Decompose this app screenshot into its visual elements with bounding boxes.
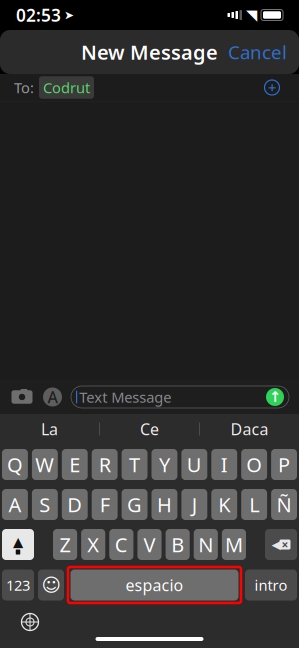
button[interactable]: Camera: [10, 388, 34, 406]
staticText: 123: [6, 575, 30, 595]
button[interactable]: Shift: [2, 529, 34, 560]
staticText: P: [278, 451, 290, 478]
staticText: Ñ: [277, 491, 292, 518]
staticText: D: [67, 491, 82, 518]
button[interactable]: La: [0, 414, 99, 444]
staticText: +: [268, 78, 276, 97]
staticText: X: [87, 531, 99, 558]
staticText: ◀: [271, 538, 280, 551]
button[interactable]: E: [62, 449, 88, 480]
staticText: R: [99, 451, 111, 478]
staticText: ☺: [41, 574, 60, 596]
staticText: M: [225, 531, 243, 558]
button[interactable]: P: [271, 449, 297, 480]
staticText: S: [39, 491, 50, 518]
staticText: U: [187, 451, 202, 478]
staticText: B: [171, 531, 184, 558]
button[interactable]: S: [32, 489, 58, 520]
staticText: Q: [7, 451, 23, 478]
staticText: Daca: [230, 418, 268, 440]
button[interactable]: Emoji: [38, 569, 64, 600]
staticText: To:: [14, 78, 34, 97]
button[interactable]: espacio: [68, 567, 241, 603]
staticText: K: [218, 491, 230, 518]
button[interactable]: J: [181, 489, 207, 520]
staticText: ◥: [246, 7, 257, 23]
staticText: ▲: [13, 534, 23, 549]
staticText: O: [246, 451, 262, 478]
staticText: E: [69, 451, 80, 478]
button[interactable]: N: [194, 529, 218, 560]
staticText: T: [129, 451, 140, 478]
staticText: New Message: [81, 39, 218, 65]
staticText: A: [8, 491, 21, 518]
staticText: F: [100, 491, 110, 518]
button[interactable]: V: [137, 529, 161, 560]
button[interactable]: Apps: [42, 386, 63, 407]
button[interactable]: R: [92, 449, 118, 480]
button[interactable]: W: [32, 449, 58, 480]
button[interactable]: Delete: [265, 529, 297, 560]
staticText: C: [115, 531, 128, 558]
staticText: Cancel: [228, 40, 287, 64]
button[interactable]: 123: [2, 569, 34, 600]
staticText: La: [41, 418, 58, 440]
button[interactable]: D: [62, 489, 88, 520]
button[interactable]: Y: [151, 449, 177, 480]
staticText: Codrut: [43, 78, 90, 97]
staticText: ➤: [64, 8, 74, 22]
button[interactable]: F: [92, 489, 118, 520]
button[interactable]: T: [122, 449, 147, 480]
button[interactable]: U: [181, 449, 207, 480]
staticText: G: [127, 491, 142, 518]
button[interactable]: Q: [2, 449, 28, 480]
button[interactable]: Ce: [100, 414, 199, 444]
staticText: Y: [159, 451, 170, 478]
button[interactable]: G: [122, 489, 147, 520]
staticText: W: [35, 451, 54, 478]
button[interactable]: A: [2, 489, 28, 520]
staticText: J: [192, 491, 197, 518]
staticText: H: [157, 491, 172, 518]
staticText: A: [47, 386, 57, 408]
button[interactable]: Cancel: [216, 32, 299, 72]
button[interactable]: O: [241, 449, 267, 480]
button[interactable]: X: [81, 529, 105, 560]
staticText: I: [221, 451, 228, 478]
staticText: N: [198, 531, 213, 558]
button[interactable]: Daca: [200, 414, 299, 444]
staticText: ↑: [269, 389, 281, 405]
staticText: 02:53: [16, 3, 61, 26]
button[interactable]: I: [211, 449, 237, 480]
staticText: Z: [60, 531, 71, 558]
button[interactable]: Send: [266, 388, 284, 406]
button[interactable]: L: [241, 489, 267, 520]
staticText: V: [143, 531, 155, 558]
button[interactable]: Next keyboard: [20, 612, 40, 632]
button[interactable]: K: [211, 489, 237, 520]
button[interactable]: H: [151, 489, 177, 520]
button[interactable]: intro: [245, 569, 297, 600]
staticText: espacio: [125, 574, 183, 596]
button[interactable]: Add contact: [259, 74, 285, 100]
staticText: Ce: [140, 418, 159, 440]
button[interactable]: B: [166, 529, 190, 560]
staticText: ×: [281, 536, 288, 552]
button[interactable]: Ñ: [271, 489, 297, 520]
button[interactable]: C: [109, 529, 133, 560]
staticText: intro: [254, 575, 287, 595]
button[interactable]: Z: [53, 529, 77, 560]
staticText: Text Message: [79, 387, 171, 407]
staticText: L: [249, 491, 259, 518]
button[interactable]: M: [222, 529, 246, 560]
